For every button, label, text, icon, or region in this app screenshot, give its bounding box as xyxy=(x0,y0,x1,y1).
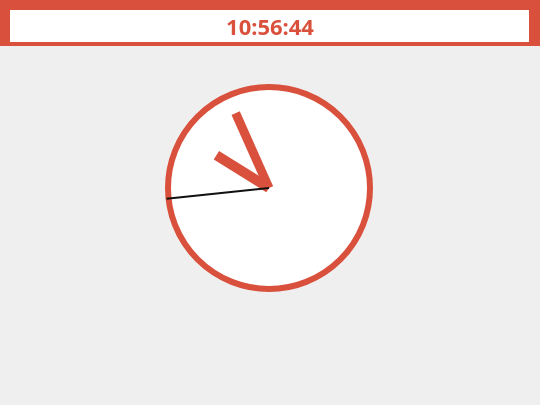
button[interactable]: Analog clock showing 10:56:44 xyxy=(165,84,373,292)
button[interactable]: 10:56:44 xyxy=(0,0,540,46)
staticText: 10:56:44 xyxy=(226,11,314,41)
